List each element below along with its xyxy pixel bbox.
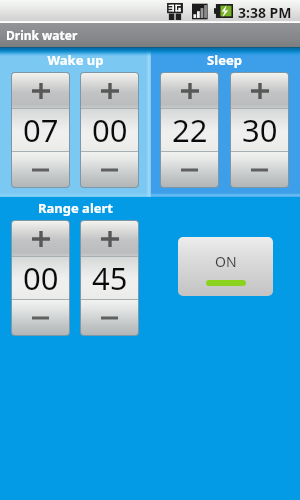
staticText: Wake up [11,51,140,69]
button[interactable]: Increment [12,73,69,108]
staticText: Range alert [11,199,140,217]
staticText: 45 [92,257,128,299]
staticText: 00 [23,257,59,299]
staticText: Sleep [160,51,289,69]
button[interactable]: Decrement [12,152,69,187]
staticText: 07 [23,109,59,151]
staticText: 3:38 PM [238,3,292,22]
button[interactable]: Increment [231,73,288,108]
button[interactable]: Decrement [81,152,138,187]
staticText: ON [215,252,237,271]
button[interactable]: Decrement [81,300,138,335]
button[interactable]: ON [178,237,273,296]
staticText: 30 [242,109,278,151]
button[interactable]: Decrement [12,300,69,335]
button[interactable]: Increment [81,73,138,108]
button[interactable]: Increment [81,221,138,256]
staticText: 00 [92,109,128,151]
button[interactable]: Increment [12,221,69,256]
staticText: 22 [172,109,208,151]
button[interactable]: Increment [161,73,218,108]
button[interactable]: Decrement [161,152,218,187]
button[interactable]: Decrement [231,152,288,187]
staticText: Drink water [6,27,78,43]
